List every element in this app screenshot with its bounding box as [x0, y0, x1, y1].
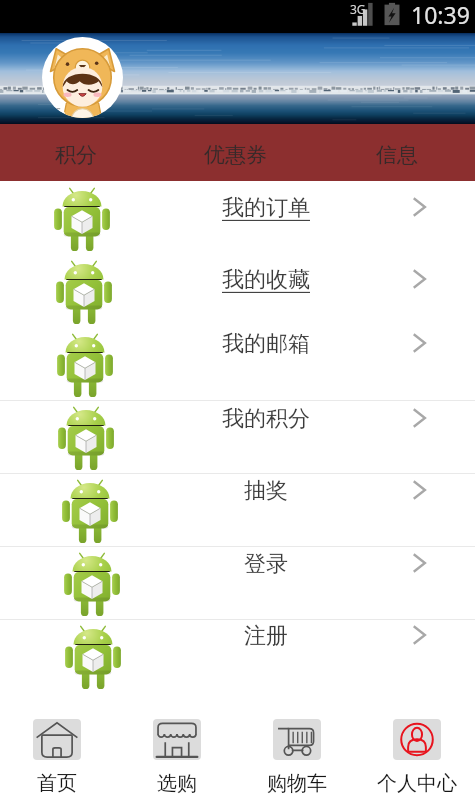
- button[interactable]: 首页: [0, 692, 114, 796]
- button[interactable]: 抽奖: [0, 473, 475, 546]
- staticText: 10:39: [411, 0, 470, 30]
- staticText: 积分: [55, 142, 97, 168]
- staticText: 信息: [376, 142, 418, 168]
- staticText: 购物车: [267, 771, 327, 796]
- staticText: 首页: [37, 771, 77, 796]
- button[interactable]: 登录: [0, 546, 475, 619]
- button[interactable]: 个人中心: [359, 692, 474, 796]
- staticText: 抽奖: [244, 477, 288, 505]
- staticText: 登录: [244, 550, 288, 578]
- button[interactable]: 积分: [0, 124, 152, 181]
- button[interactable]: 选购: [119, 692, 234, 796]
- button[interactable]: 信息: [318, 124, 475, 181]
- button[interactable]: Profile avatar: [42, 37, 123, 118]
- staticText: 注册: [244, 622, 288, 650]
- button[interactable]: 注册: [0, 619, 475, 692]
- staticText: 我的收藏: [222, 266, 310, 294]
- button[interactable]: 我的订单: [0, 181, 475, 254]
- staticText: 优惠券: [204, 142, 267, 168]
- button[interactable]: 我的收藏: [0, 254, 475, 327]
- button[interactable]: 购物车: [239, 692, 354, 796]
- button[interactable]: 优惠券: [152, 124, 318, 181]
- staticText: 我的订单: [222, 194, 310, 222]
- button[interactable]: 我的积分: [0, 400, 475, 473]
- staticText: 我的积分: [222, 405, 310, 433]
- staticText: 选购: [157, 771, 197, 796]
- staticText: 个人中心: [377, 771, 457, 796]
- staticText: 3G: [350, 1, 366, 17]
- button[interactable]: 我的邮箱: [0, 327, 475, 400]
- staticText: 我的邮箱: [222, 330, 310, 358]
